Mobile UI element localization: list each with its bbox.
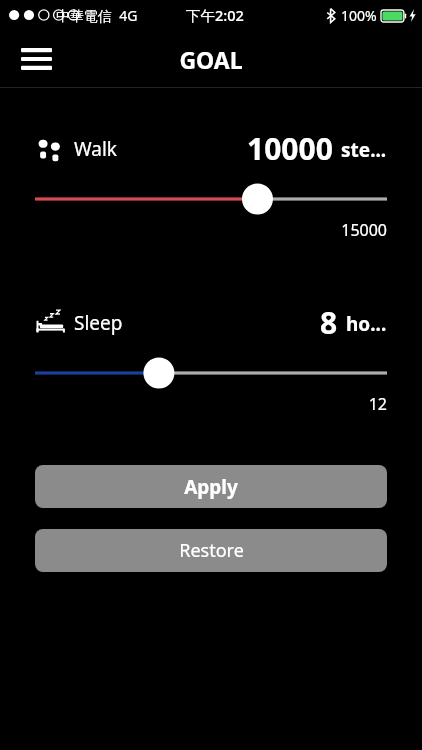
button[interactable]: Sleep goal slider: [35, 357, 387, 389]
staticText: Walk: [74, 136, 117, 162]
staticText: Restore: [179, 538, 244, 563]
staticText: 中華電信 4G: [56, 6, 138, 25]
staticText: GOAL: [179, 44, 243, 75]
button[interactable]: Apply: [35, 465, 387, 508]
staticText: 15000: [35, 219, 387, 241]
staticText: 下午2:02: [186, 5, 244, 25]
staticText: ste...: [341, 137, 387, 163]
staticText: 10000: [247, 128, 333, 169]
staticText: 12: [35, 393, 387, 415]
button[interactable]: Restore: [35, 529, 387, 572]
staticText: ho...: [346, 311, 387, 337]
staticText: 8: [320, 302, 338, 343]
button[interactable]: Walk goal slider: [35, 183, 387, 215]
staticText: Apply: [184, 474, 238, 500]
staticText: 100%: [341, 6, 377, 25]
staticText: Sleep: [74, 310, 123, 336]
button[interactable]: Menu: [12, 37, 60, 81]
